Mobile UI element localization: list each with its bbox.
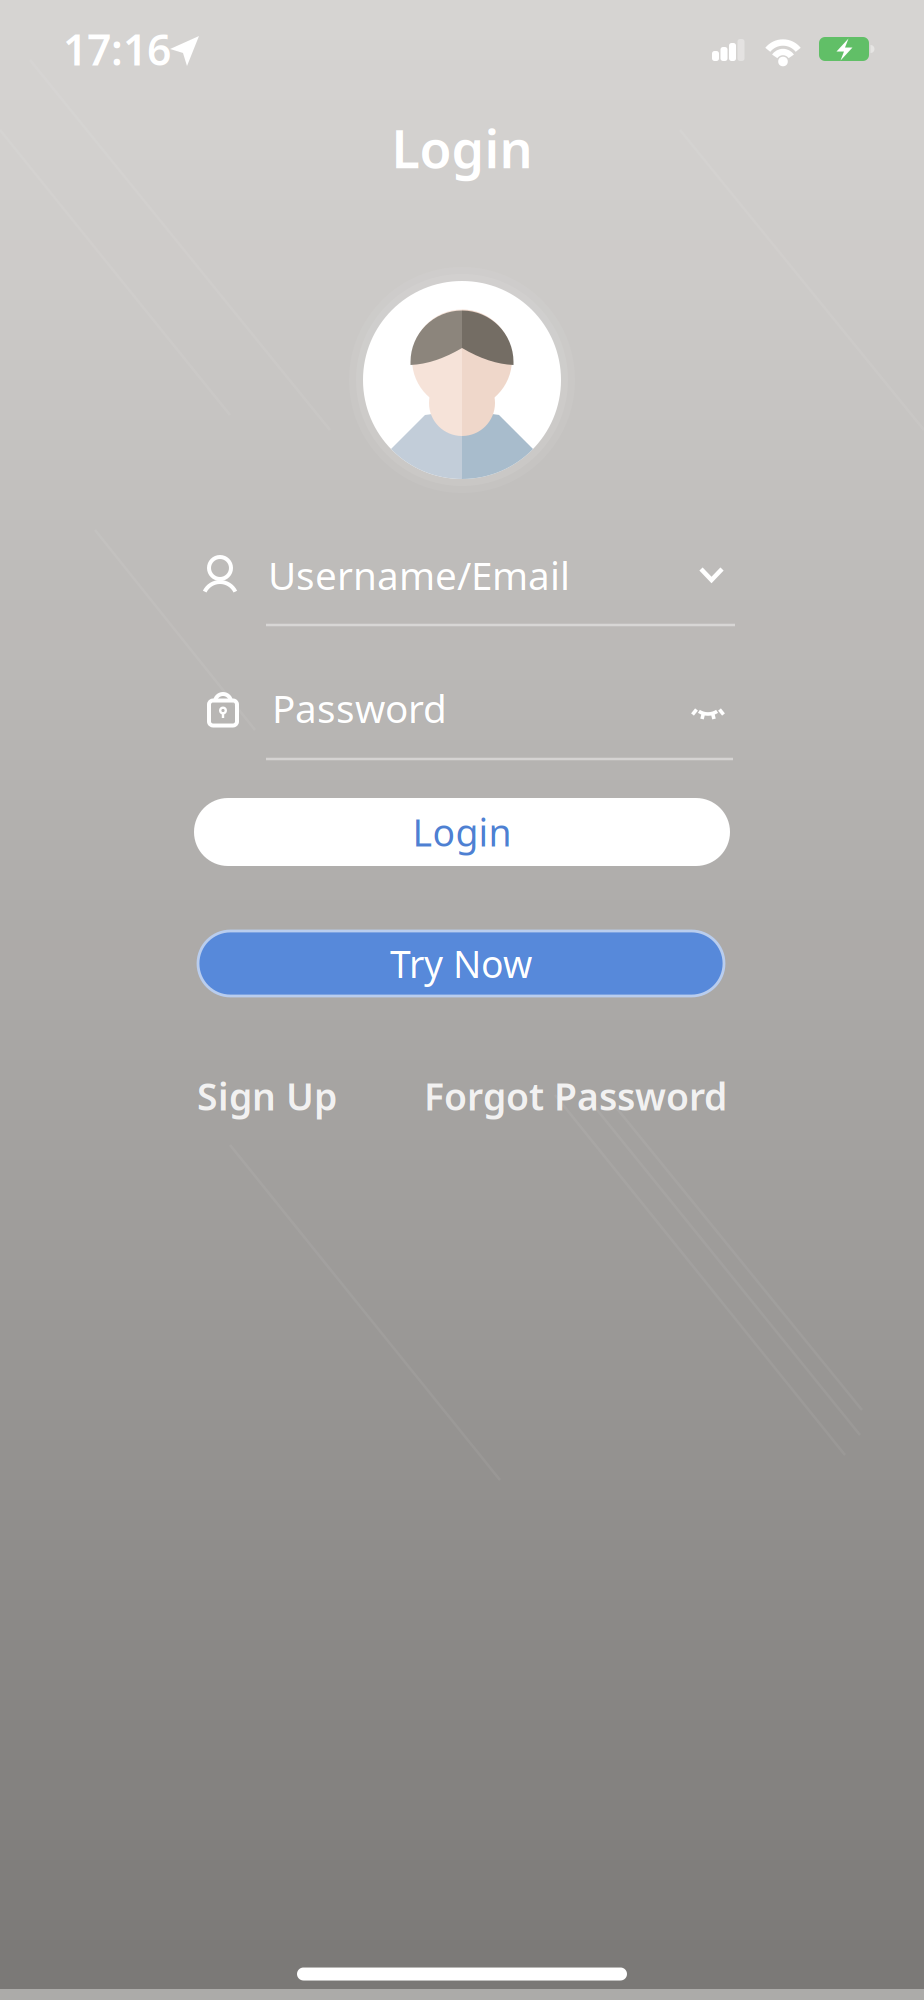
staticText: Password (272, 682, 447, 734)
staticText: Login (391, 113, 532, 183)
staticText: Username/Email (268, 549, 570, 601)
staticText: Forgot Password (424, 1071, 727, 1121)
button[interactable]: Login (194, 798, 730, 866)
staticText: Login (412, 807, 511, 857)
button[interactable]: Username/Email (200, 544, 736, 628)
button[interactable]: Try Now (198, 931, 724, 996)
staticText: Sign Up (197, 1071, 337, 1121)
button[interactable]: Sign Up (197, 1071, 497, 1121)
staticText: Try Now (390, 939, 532, 988)
staticText: 17:16 (63, 21, 171, 77)
button[interactable]: Forgot Password (367, 1071, 727, 1121)
button[interactable]: Password (200, 677, 736, 761)
